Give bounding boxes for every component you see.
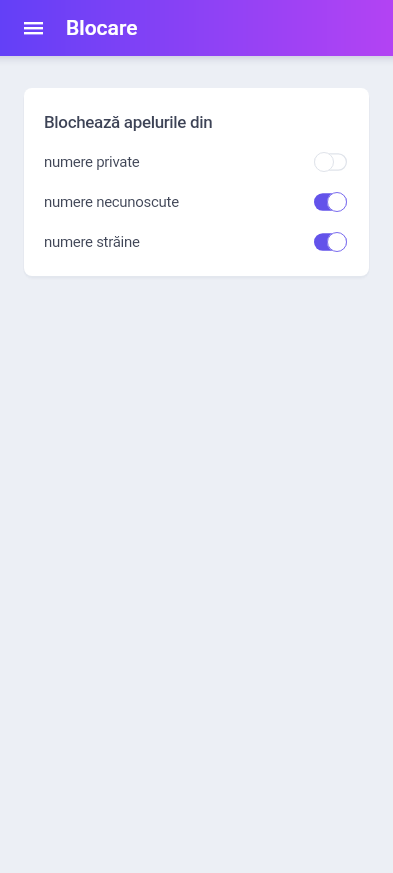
button[interactable]: Blochează numere necunoscute: pornit bbox=[314, 192, 347, 212]
button[interactable]: numere necunoscute bbox=[24, 182, 369, 222]
staticText: numere necunoscute bbox=[44, 193, 179, 211]
button[interactable]: numere străine bbox=[24, 222, 369, 262]
button[interactable]: numere private bbox=[24, 142, 369, 182]
button[interactable]: Blochează numere private: oprit bbox=[314, 152, 347, 172]
button[interactable]: Open navigation menu bbox=[12, 4, 54, 52]
staticText: numere străine bbox=[44, 233, 140, 251]
button[interactable]: Blochează numere străine: pornit bbox=[314, 232, 347, 252]
staticText: numere private bbox=[44, 153, 140, 171]
staticText: Blocare bbox=[66, 16, 138, 41]
staticText: Blochează apelurile din bbox=[44, 112, 213, 132]
